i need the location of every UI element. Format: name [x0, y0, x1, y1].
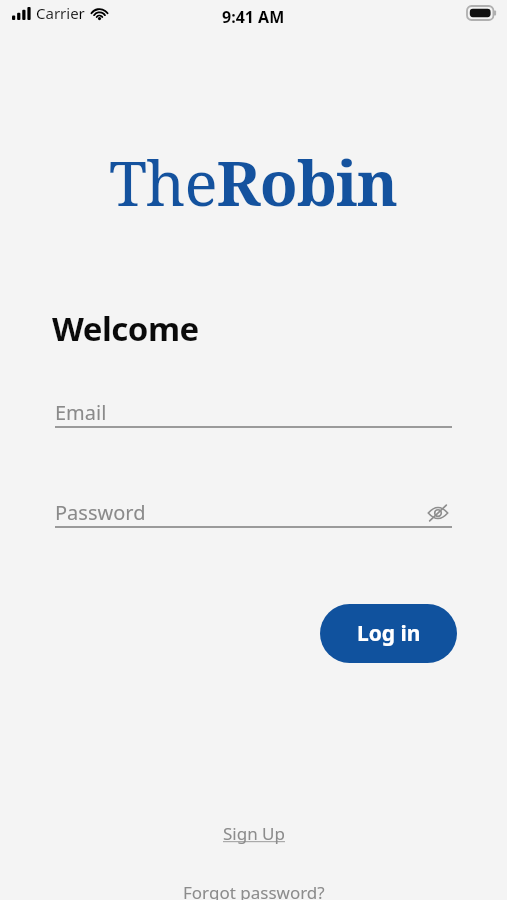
- staticText: Forgot password?: [183, 881, 325, 900]
- button[interactable]: Forgot password?: [173, 877, 335, 900]
- staticText: Email: [55, 399, 107, 426]
- staticText: Welcome: [52, 306, 199, 351]
- staticText: Log in: [357, 619, 421, 648]
- button[interactable]: Sign Up: [213, 818, 295, 849]
- staticText: Carrier: [36, 3, 85, 23]
- button[interactable]: Email: [55, 396, 452, 429]
- button[interactable]: Password: [55, 496, 452, 529]
- staticText: 9:41 AM: [222, 6, 285, 28]
- staticText: Password: [55, 499, 146, 526]
- button[interactable]: Show password: [424, 499, 452, 527]
- button[interactable]: Log in: [320, 604, 457, 663]
- staticText: Sign Up: [223, 822, 285, 845]
- staticText: TheRobin: [109, 140, 398, 210]
